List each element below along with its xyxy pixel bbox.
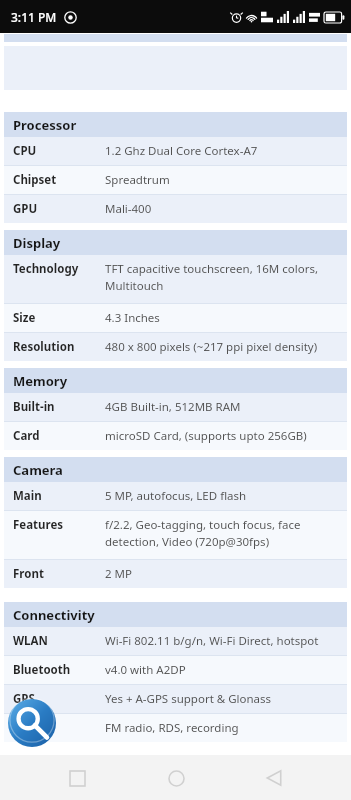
staticText: TFT capacitive touchscreen, 16M colors, … [105, 261, 339, 293]
button[interactable]: Display [4, 230, 347, 255]
staticText: GPS [13, 691, 35, 707]
staticText: 5 MP, autofocus, LED flash [105, 488, 247, 504]
staticText: Processor [13, 116, 77, 134]
staticText: Card [13, 428, 40, 444]
staticText: 2 MP [105, 566, 132, 582]
staticText: Wi-Fi 802.11 b/g/n, Wi-Fi Direct, hotspo… [105, 633, 319, 649]
staticText: FM radio, RDS, recording [105, 720, 239, 736]
staticText: GPU [13, 201, 38, 217]
staticText: Front [13, 566, 44, 582]
button[interactable]: Home [154, 756, 198, 800]
staticText: Spreadtrum [105, 172, 170, 188]
staticText: Main [13, 488, 42, 504]
button[interactable]: GPS [4, 685, 347, 713]
button[interactable]: Back [252, 756, 296, 800]
button[interactable]: Features [4, 511, 347, 559]
button[interactable]: Memory [4, 368, 347, 393]
button[interactable]: Card [4, 422, 347, 450]
button[interactable]: Size [4, 304, 347, 332]
button[interactable]: Radio [4, 714, 347, 742]
button[interactable]: CPU [4, 137, 347, 165]
staticText: CPU [13, 143, 37, 159]
staticText: Built-in [13, 399, 55, 415]
staticText: 1.2 Ghz Dual Core Cortex-A7 [105, 143, 258, 159]
button[interactable]: GPU [4, 195, 347, 223]
button[interactable]: WLAN [4, 627, 347, 655]
button[interactable]: Built-in [4, 393, 347, 421]
staticText: Bluetooth [13, 662, 71, 678]
button[interactable]: Bluetooth [4, 656, 347, 684]
button[interactable]: Camera [4, 457, 347, 482]
staticText: Connectivity [13, 606, 95, 624]
staticText: Camera [13, 461, 63, 479]
staticText: Size [13, 310, 36, 326]
staticText: Resolution [13, 339, 75, 355]
staticText: Radio [13, 720, 46, 736]
staticText: 4GB Built-in, 512MB RAM [105, 399, 241, 415]
staticText: v4.0 with A2DP [105, 662, 186, 678]
button[interactable]: Main [4, 482, 347, 510]
staticText: WLAN [13, 633, 48, 649]
staticText: Features [13, 517, 64, 533]
button[interactable]: Resolution [4, 333, 347, 361]
button[interactable]: Chipset [4, 166, 347, 194]
staticText: microSD Card, (supports upto 256GB) [105, 428, 307, 444]
button[interactable]: Front [4, 560, 347, 588]
staticText: Mali-400 [105, 201, 152, 217]
staticText: 4.3 Inches [105, 310, 160, 326]
staticText: Yes + A-GPS support & Glonass [105, 691, 272, 707]
staticText: Chipset [13, 172, 57, 188]
staticText: f/2.2, Geo-tagging, touch focus, face de… [105, 517, 339, 549]
staticText: 480 x 800 pixels (~217 ppi pixel density… [105, 339, 318, 355]
button[interactable]: Search [6, 697, 58, 749]
button[interactable]: Technology [4, 255, 347, 303]
button[interactable]: Connectivity [4, 602, 347, 627]
staticText: Display [13, 234, 61, 252]
staticText: 3:11 PM [11, 9, 57, 25]
button[interactable]: Recents [55, 756, 99, 800]
staticText: Memory [13, 372, 68, 390]
staticText: Technology [13, 261, 79, 277]
button[interactable]: Processor [4, 112, 347, 137]
